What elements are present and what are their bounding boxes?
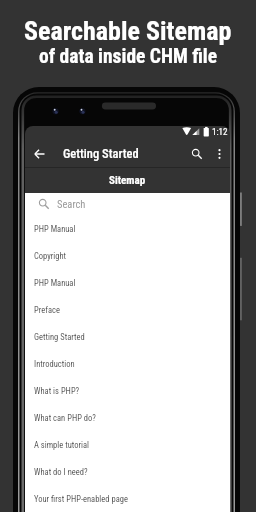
staticText: What do I need? <box>34 467 88 477</box>
staticText: PHP Manual <box>34 278 76 288</box>
button[interactable]: What can PHP do? <box>25 404 230 431</box>
staticText: Searchable Sitemap <box>24 16 232 46</box>
button[interactable]: More options <box>208 139 230 168</box>
staticText: Search <box>57 198 86 210</box>
staticText: Getting Started <box>63 146 139 161</box>
staticText: PHP Manual <box>34 224 76 234</box>
staticText: Introduction <box>34 359 75 369</box>
button[interactable]: What is PHP? <box>25 377 230 404</box>
button[interactable]: Preface <box>25 296 230 323</box>
staticText: A simple tutorial <box>34 440 90 450</box>
button[interactable]: Search <box>25 193 230 215</box>
button[interactable]: Sitemap <box>25 168 230 193</box>
button[interactable]: Back <box>25 139 54 168</box>
staticText: Copyright <box>34 251 67 261</box>
button[interactable]: Your first PHP-enabled page <box>25 485 230 512</box>
staticText: What can PHP do? <box>34 413 96 423</box>
staticText: Sitemap <box>109 174 146 187</box>
staticText: of data inside CHM file <box>39 45 218 68</box>
button[interactable]: What do I need? <box>25 458 230 485</box>
button[interactable]: PHP Manual <box>25 269 230 296</box>
button[interactable]: Copyright <box>25 242 230 269</box>
staticText: Your first PHP-enabled page <box>34 494 128 504</box>
staticText: What is PHP? <box>34 386 80 396</box>
button[interactable]: Introduction <box>25 350 230 377</box>
button[interactable]: PHP Manual <box>25 215 230 242</box>
button[interactable]: Search <box>186 139 208 168</box>
button[interactable]: A simple tutorial <box>25 431 230 458</box>
button[interactable]: Getting Started <box>25 323 230 350</box>
staticText: 1:12 <box>212 127 228 138</box>
staticText: Preface <box>34 305 60 315</box>
staticText: Getting Started <box>34 332 85 342</box>
